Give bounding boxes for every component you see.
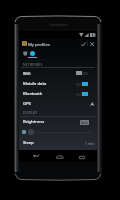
button[interactable]: Home: [53, 151, 67, 163]
button[interactable]: Brightness: [19, 117, 97, 127]
button[interactable]: Recent apps: [75, 151, 89, 163]
button[interactable]: Wifi: [19, 69, 97, 79]
button[interactable]: Back: [29, 150, 43, 162]
button[interactable]: Off: [76, 70, 88, 76]
staticText: Auto: [81, 121, 89, 125]
button[interactable]: Mobile data: [19, 79, 97, 89]
staticText: My profiles: [28, 42, 50, 48]
button[interactable]: Profiles tab: [21, 48, 30, 58]
button[interactable]: Bluetooth: [19, 89, 97, 99]
staticText: GPS: [23, 101, 31, 107]
button[interactable]: Auto: [80, 120, 89, 125]
button[interactable]: On: [76, 91, 88, 97]
staticText: Sleep: [23, 140, 34, 146]
staticText: Mobile data: [23, 81, 47, 87]
button[interactable]: On: [76, 81, 88, 87]
button[interactable]: Cancel: [88, 39, 96, 50]
staticText: Bluetooth: [23, 91, 43, 97]
button[interactable]: GPS: [19, 99, 97, 109]
button[interactable]: Sleep: [19, 138, 97, 148]
staticText: Brightness: [23, 119, 45, 125]
staticText: 1 min: [85, 141, 95, 146]
staticText: NETWORKS: [23, 63, 43, 67]
button[interactable]: Settings tab: [28, 48, 37, 58]
button[interactable]: GPS: [89, 100, 96, 108]
staticText: Wifi: [23, 71, 31, 77]
button[interactable]: Save: [79, 39, 87, 50]
staticText: DISPLAY: [23, 111, 38, 115]
button[interactable]: Brightness slider: [28, 129, 34, 135]
